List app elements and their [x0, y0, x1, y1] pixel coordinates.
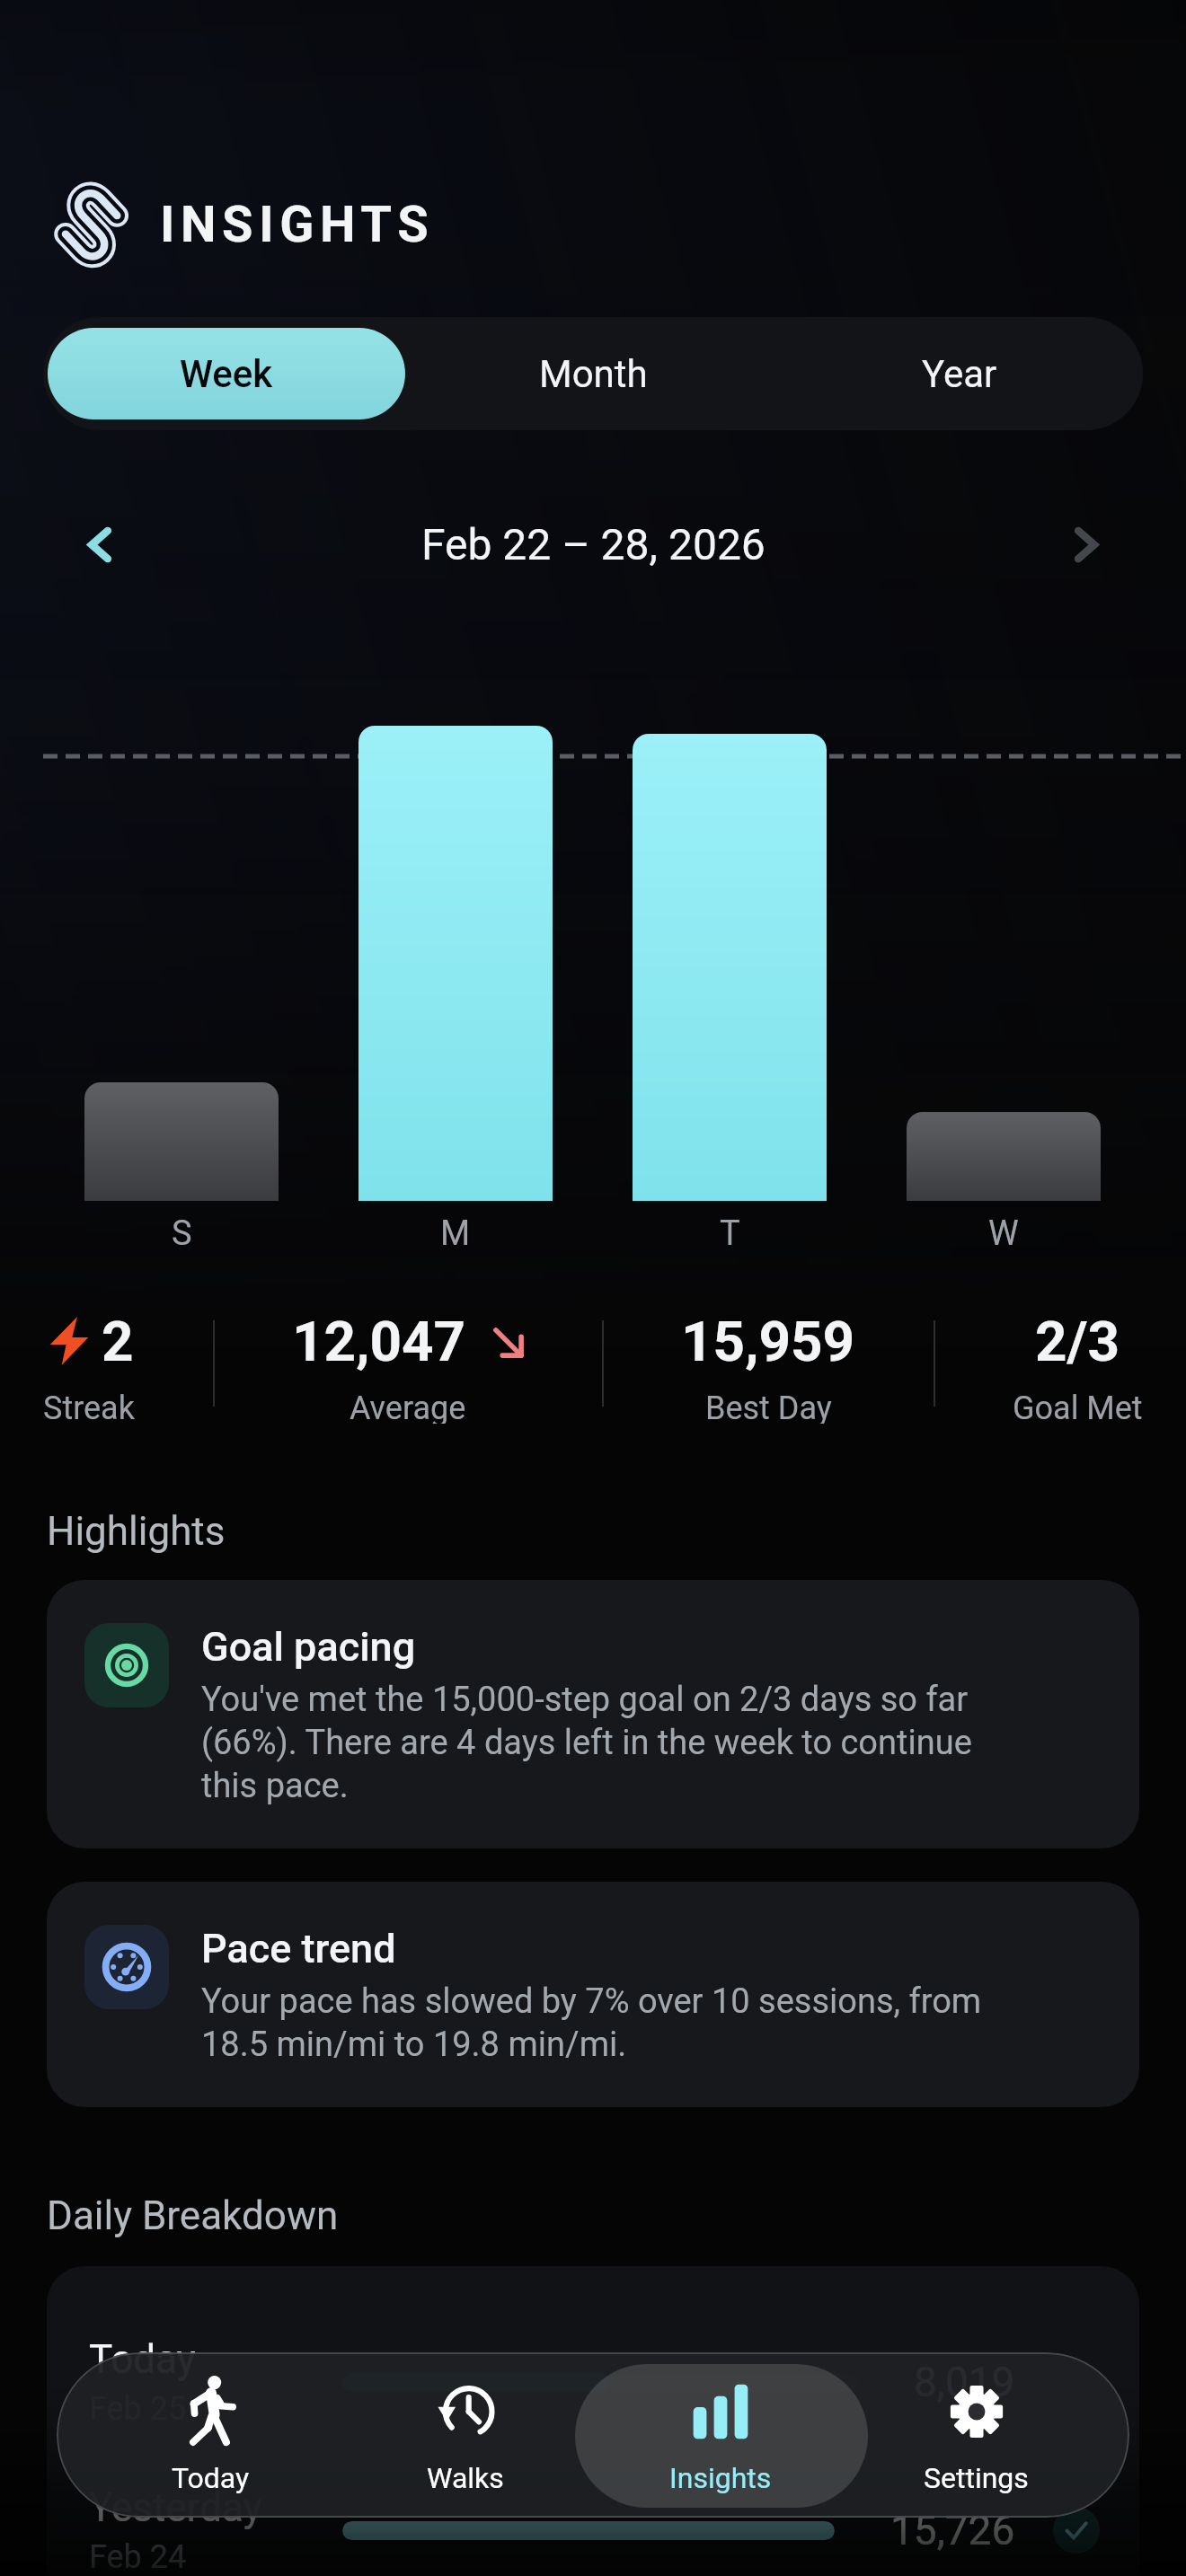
staticText: 15,959: [681, 1309, 855, 1373]
staticText: Average: [350, 1389, 466, 1424]
staticText: Insights: [669, 2461, 772, 2495]
staticText: Streak: [43, 1389, 135, 1424]
staticText: Feb 22 – 28, 2026: [421, 519, 766, 569]
button[interactable]: Insights: [593, 2352, 848, 2518]
staticText: Best Day: [705, 1389, 832, 1424]
button[interactable]: Year: [781, 328, 1138, 419]
button[interactable]: Today: [83, 2352, 338, 2518]
staticText: Daily Breakdown: [47, 2192, 339, 2239]
staticText: Today: [172, 2461, 250, 2495]
staticText: Today: [89, 2336, 196, 2383]
button[interactable]: Previous week: [55, 499, 145, 589]
staticText: Your pace has slowed by 7% over 10 sessi…: [201, 1981, 1022, 2064]
button[interactable]: Settings: [848, 2352, 1103, 2518]
staticText: 2/3: [1035, 1309, 1120, 1373]
staticText: Pace trend: [201, 1925, 396, 1972]
staticText: Yesterday: [89, 2484, 262, 2531]
staticText: Walks: [427, 2461, 504, 2495]
button[interactable]: Pace trend: [47, 1882, 1139, 2107]
button[interactable]: Week: [48, 328, 405, 419]
staticText: Year: [922, 352, 997, 396]
staticText: 15,726: [890, 2506, 1015, 2554]
staticText: 12,047: [292, 1309, 466, 1373]
staticText: Week: [180, 352, 273, 396]
staticText: Feb 24: [89, 2538, 187, 2576]
staticText: Goal pacing: [201, 1623, 416, 1671]
staticText: M: [440, 1213, 471, 1254]
staticText: Highlights: [47, 1508, 226, 1555]
staticText: Settings: [924, 2461, 1029, 2495]
staticText: Month: [539, 352, 648, 396]
staticText: You've met the 15,000-step goal on 2/3 d…: [201, 1680, 1022, 1805]
button[interactable]: Walks: [338, 2352, 593, 2518]
staticText: 8,019: [914, 2358, 1015, 2406]
staticText: Goal Met: [1013, 1389, 1143, 1424]
button[interactable]: Month: [414, 328, 772, 419]
staticText: S: [172, 1213, 192, 1254]
staticText: W: [988, 1213, 1019, 1254]
staticText: T: [720, 1213, 740, 1254]
staticText: 2: [102, 1309, 134, 1373]
staticText: INSIGHTS: [160, 195, 435, 254]
button[interactable]: Next week: [1041, 499, 1131, 589]
button[interactable]: Goal pacing: [47, 1580, 1139, 1848]
